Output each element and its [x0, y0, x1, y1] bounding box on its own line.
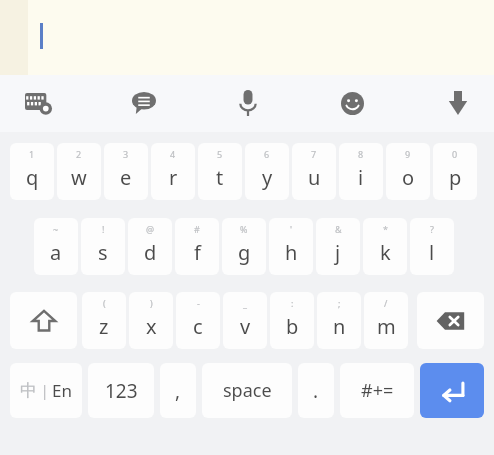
staticText: / [384, 297, 388, 309]
staticText: e [120, 164, 132, 191]
staticText: : [291, 297, 294, 309]
staticText: | [37, 381, 52, 400]
staticText: u [308, 164, 321, 191]
staticText: ? [430, 223, 434, 235]
staticText: , [175, 378, 181, 404]
button[interactable]: 1 [10, 143, 54, 200]
button[interactable]: @ [128, 218, 172, 275]
staticText: d [144, 239, 157, 266]
button[interactable]: 0 [433, 143, 477, 200]
staticText: 5 [217, 148, 223, 160]
button[interactable]: #+= [340, 363, 414, 418]
staticText: p [449, 164, 462, 191]
staticText: # [194, 223, 200, 235]
staticText: c [193, 313, 203, 340]
button[interactable]: Voice input [226, 84, 270, 122]
button[interactable]: ! [81, 218, 125, 275]
staticText: #+= [361, 378, 394, 403]
staticText: 2 [76, 148, 82, 160]
staticText: % [240, 223, 248, 235]
button[interactable]: # [175, 218, 219, 275]
staticText: ~ [53, 223, 59, 235]
staticText: ! [102, 223, 105, 235]
staticText: * [383, 223, 388, 235]
staticText: x [146, 313, 157, 340]
button[interactable]: ? [410, 218, 454, 275]
staticText: space [223, 378, 272, 403]
staticText: z [99, 313, 109, 340]
button[interactable]: ; [317, 292, 361, 349]
staticText: i [358, 164, 364, 191]
button[interactable]: 7 [292, 143, 336, 200]
staticText: @ [146, 223, 155, 235]
button[interactable]: Emoji [330, 84, 374, 122]
button[interactable]: Backspace [417, 292, 484, 349]
staticText: . [313, 378, 319, 404]
button[interactable]: : [270, 292, 314, 349]
staticText: g [238, 239, 251, 266]
staticText: 6 [264, 148, 270, 160]
staticText: n [333, 313, 346, 340]
button[interactable]: 9 [386, 143, 430, 200]
button[interactable]: . [298, 363, 334, 418]
button[interactable]: Shift [10, 292, 77, 349]
staticText: t [216, 164, 224, 191]
button[interactable]: ) [129, 292, 173, 349]
staticText: w [71, 164, 87, 191]
button[interactable]: * [363, 218, 407, 275]
button[interactable]: ( [82, 292, 126, 349]
button[interactable]: Enter [420, 363, 484, 418]
button[interactable]: 5 [198, 143, 242, 200]
staticText: 中 [20, 380, 37, 401]
staticText: f [194, 239, 201, 266]
staticText: r [169, 164, 178, 191]
staticText: b [286, 313, 299, 340]
staticText: o [402, 164, 415, 191]
staticText: En [52, 379, 72, 402]
button[interactable]: ~ [34, 218, 78, 275]
staticText: k [380, 239, 391, 266]
staticText: _ [243, 297, 247, 309]
button[interactable]: 123 [88, 363, 154, 418]
button[interactable]: _ [223, 292, 267, 349]
staticText: h [285, 239, 298, 266]
staticText: j [335, 239, 341, 266]
button[interactable]: Messages [120, 84, 168, 122]
staticText: 123 [105, 378, 138, 404]
staticText: ( [103, 297, 106, 309]
button[interactable]: 6 [245, 143, 289, 200]
staticText: m [377, 313, 396, 340]
button[interactable]: space [202, 363, 292, 418]
staticText: v [240, 313, 251, 340]
button[interactable]: / [364, 292, 408, 349]
staticText: 7 [311, 148, 317, 160]
staticText: s [98, 239, 108, 266]
button[interactable]: ' [269, 218, 313, 275]
button[interactable]: Switch language [10, 363, 82, 418]
button[interactable]: Hide keyboard [436, 84, 480, 122]
staticText: y [262, 164, 273, 191]
staticText: a [50, 239, 62, 266]
button[interactable]: 4 [151, 143, 195, 200]
staticText: 9 [405, 148, 411, 160]
button[interactable]: & [316, 218, 360, 275]
staticText: ' [290, 223, 293, 235]
button[interactable]: 2 [57, 143, 101, 200]
staticText: ) [150, 297, 153, 309]
staticText: 3 [123, 148, 129, 160]
staticText: 1 [29, 148, 35, 160]
staticText: ; [338, 297, 341, 309]
staticText: q [26, 164, 39, 191]
staticText: 0 [452, 148, 458, 160]
button[interactable]: % [222, 218, 266, 275]
staticText: - [197, 297, 200, 309]
staticText: 4 [170, 148, 176, 160]
button[interactable]: - [176, 292, 220, 349]
staticText: 8 [358, 148, 364, 160]
staticText: & [335, 223, 342, 235]
button[interactable]: 8 [339, 143, 383, 200]
button[interactable]: , [160, 363, 196, 418]
button[interactable]: 3 [104, 143, 148, 200]
button[interactable]: Keyboard settings [14, 84, 62, 122]
staticText: l [429, 239, 435, 266]
